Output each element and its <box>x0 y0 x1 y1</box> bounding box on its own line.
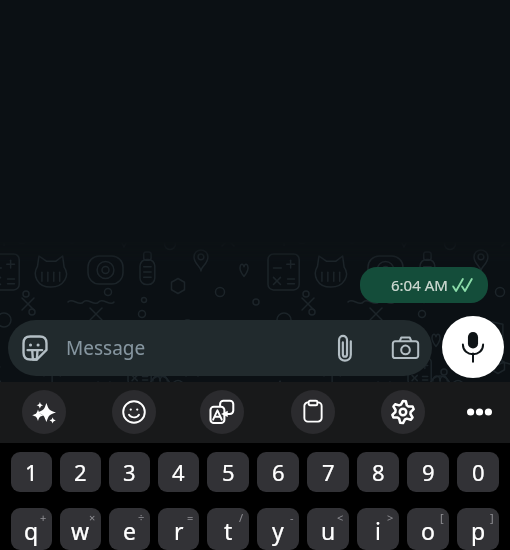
staticText: / <box>239 510 244 525</box>
staticText: y <box>272 515 284 546</box>
staticText: 3 <box>123 457 136 487</box>
button[interactable]: > <box>357 508 399 550</box>
staticText: q <box>24 515 39 546</box>
button[interactable]: Message <box>8 320 432 376</box>
button[interactable]: 6:04 AM <box>360 267 488 303</box>
button[interactable]: 1 <box>11 452 52 492</box>
button[interactable]: 0 <box>457 452 499 492</box>
button[interactable]: < <box>307 508 349 550</box>
button[interactable]: Translate <box>200 390 244 434</box>
staticText: i <box>375 515 381 546</box>
button[interactable]: Settings <box>381 390 425 434</box>
staticText: - <box>290 510 294 525</box>
button[interactable]: 7 <box>307 452 349 492</box>
button[interactable]: AI writing help <box>22 390 66 434</box>
staticText: [ <box>440 510 444 525</box>
staticText: 7 <box>322 457 335 487</box>
staticText: 8 <box>372 457 385 487</box>
staticText: = <box>187 510 194 525</box>
staticText: Message <box>66 335 146 361</box>
staticText: 0 <box>472 457 485 487</box>
button[interactable]: = <box>158 508 199 550</box>
staticText: 6 <box>272 457 285 487</box>
staticText: 5 <box>222 457 235 487</box>
staticText: + <box>40 510 47 525</box>
button[interactable]: Clipboard <box>291 390 335 434</box>
button[interactable]: 6 <box>257 452 299 492</box>
button[interactable]: 3 <box>109 452 150 492</box>
button[interactable]: ÷ <box>109 508 150 550</box>
staticText: p <box>471 515 486 546</box>
staticText: ] <box>490 510 494 525</box>
staticText: ÷ <box>138 510 145 525</box>
button[interactable]: Camera <box>389 332 421 364</box>
staticText: < <box>337 510 344 525</box>
button[interactable]: Emoji <box>112 390 156 434</box>
staticText: × <box>89 510 96 525</box>
button[interactable]: - <box>257 508 299 550</box>
button[interactable]: 8 <box>357 452 399 492</box>
staticText: r <box>174 515 184 546</box>
button[interactable]: + <box>11 508 52 550</box>
button[interactable]: More options <box>457 390 501 434</box>
button[interactable]: 2 <box>60 452 101 492</box>
button[interactable]: ] <box>457 508 499 550</box>
staticText: > <box>387 510 394 525</box>
staticText: w <box>71 515 90 546</box>
staticText: 9 <box>422 457 435 487</box>
button[interactable]: [ <box>407 508 449 550</box>
staticText: t <box>224 515 233 546</box>
staticText: e <box>123 515 136 546</box>
staticText: u <box>321 515 336 546</box>
button[interactable]: 5 <box>207 452 249 492</box>
staticText: o <box>421 515 435 546</box>
button[interactable]: Voice message <box>442 316 504 378</box>
staticText: 1 <box>25 457 38 487</box>
button[interactable]: × <box>60 508 101 550</box>
staticText: 4 <box>172 457 185 487</box>
button[interactable]: 4 <box>158 452 199 492</box>
button[interactable]: 9 <box>407 452 449 492</box>
staticText: 6:04 AM <box>391 275 448 295</box>
staticText: 2 <box>74 457 87 487</box>
button[interactable]: / <box>207 508 249 550</box>
button[interactable]: Attach <box>329 332 361 364</box>
